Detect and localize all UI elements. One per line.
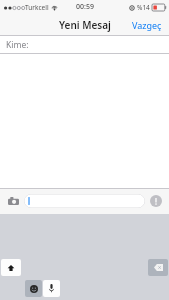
button[interactable]: Backspace [148, 259, 168, 276]
button[interactable]: Kime: [0, 36, 169, 54]
staticText: 00:59 [76, 2, 94, 12]
staticText: Turkcell [25, 3, 49, 12]
staticText: %14 [137, 3, 150, 12]
button[interactable]: Shift [1, 259, 21, 276]
button[interactable]: Send [148, 193, 164, 209]
button[interactable]: Camera [5, 193, 21, 209]
button[interactable]: Vazgeç [130, 16, 164, 34]
staticText: Vazgeç [132, 19, 162, 31]
button[interactable]: Emoji [25, 280, 42, 297]
button[interactable]: Dictate [43, 280, 60, 297]
button[interactable] [24, 194, 145, 208]
staticText: Kime: [6, 39, 29, 51]
staticText: Yeni Mesaj [59, 18, 111, 32]
